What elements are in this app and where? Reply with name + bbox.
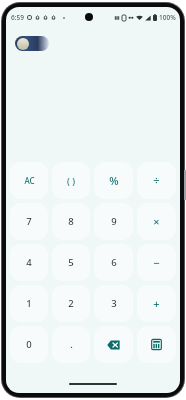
button[interactable]: 8 (52, 203, 90, 240)
button[interactable]: 0 (10, 326, 48, 363)
staticText: 0 (26, 338, 32, 351)
button[interactable]: . (52, 326, 90, 363)
button[interactable]: 2 (52, 285, 90, 322)
button[interactable]: 9 (94, 203, 133, 240)
staticText: . (70, 338, 73, 351)
button[interactable]: % (94, 162, 133, 199)
staticText: 1 (26, 297, 32, 310)
staticText: 3 (111, 297, 117, 310)
staticText: % (109, 173, 119, 188)
staticText: 9 (111, 215, 117, 228)
staticText: 6 (111, 256, 117, 269)
button[interactable]: ( ) (52, 162, 90, 199)
staticText: AC (24, 175, 35, 186)
button[interactable]: 6 (94, 244, 133, 281)
button[interactable]: Equals (137, 326, 176, 363)
button[interactable]: + (137, 285, 176, 322)
button[interactable]: 3 (94, 285, 133, 322)
staticText: 8 (68, 215, 74, 228)
button[interactable]: − (137, 244, 176, 281)
button[interactable]: 1 (10, 285, 48, 322)
staticText: 2 (68, 297, 74, 310)
staticText: 5 (68, 256, 74, 269)
staticText: 100% (159, 13, 176, 22)
button[interactable]: Backspace (94, 326, 133, 363)
staticText: 6:59 (11, 13, 24, 22)
button[interactable]: AC (10, 162, 48, 199)
button[interactable]: 5 (52, 244, 90, 281)
staticText: × (153, 214, 160, 229)
button[interactable]: × (137, 203, 176, 240)
staticText: − (153, 255, 160, 270)
staticText: 7 (26, 215, 32, 228)
button[interactable]: Floating bubble (15, 36, 49, 51)
button[interactable]: 4 (10, 244, 48, 281)
staticText: ( ) (67, 175, 75, 187)
button[interactable]: ÷ (137, 162, 176, 199)
staticText: + (153, 296, 160, 311)
staticText: 4 (26, 256, 32, 269)
button[interactable]: 7 (10, 203, 48, 240)
staticText: ÷ (153, 173, 160, 188)
